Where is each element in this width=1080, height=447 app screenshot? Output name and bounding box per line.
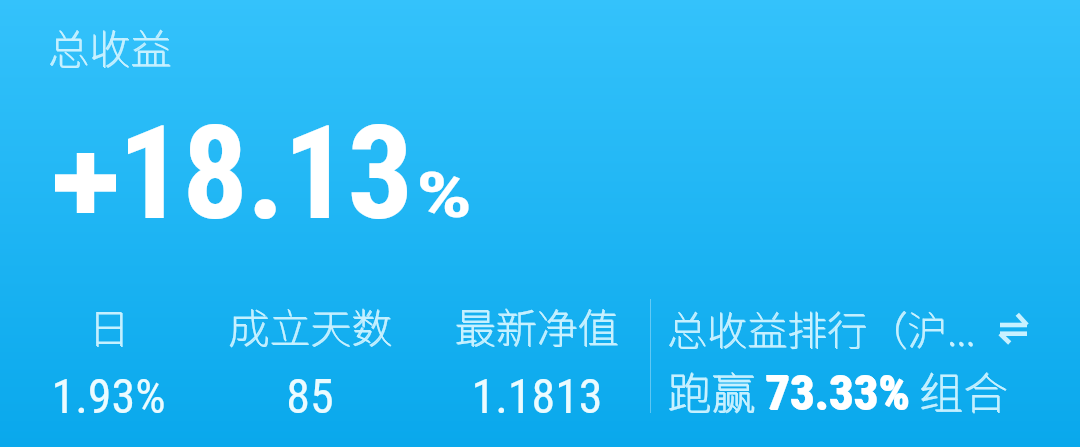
staticText: 最新净值 [431,295,642,354]
staticText: 总收益排行（沪... [667,299,975,357]
staticText: 跑赢 73.33% 组合 [667,358,1008,422]
staticText: 总收益 [49,17,172,73]
staticText: 1.1813 [471,368,603,424]
staticText: 最新净值 [432,296,643,355]
button[interactable]: 日 [0,295,217,424]
staticText: 成立天数 [215,295,405,354]
staticText: 日 [0,295,217,354]
staticText: 18.13 [118,97,412,249]
staticText: % [416,157,473,232]
staticText: 跑赢 73.33% 组合 [668,359,1009,423]
staticText: 成立天数 [216,296,406,355]
button[interactable]: Switch comparison benchmark [991,306,1035,350]
button[interactable]: 总收益 [40,10,180,66]
staticText: 总收益排行（沪... [668,300,976,358]
staticText: 1.93% [51,368,166,424]
button[interactable]: 最新净值 [431,295,642,424]
button[interactable]: 成立天数 [215,295,405,424]
button[interactable]: 总收益排行（沪... [667,299,1067,422]
button[interactable]: Total return +18.13% [40,110,490,230]
staticText: 85 [286,368,334,424]
staticText: 总收益 [48,16,171,72]
staticText: 日 [1,296,218,355]
